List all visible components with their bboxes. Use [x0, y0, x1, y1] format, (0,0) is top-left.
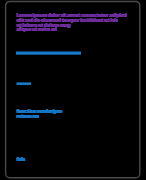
- staticText: Lorem ipsum dolor sit amet consectetur a…: [17, 12, 128, 19]
- staticText: aliqua ut enim ad: [17, 26, 58, 33]
- staticText: aliqua ut enim ad: [16, 26, 57, 33]
- staticText: fals: [17, 156, 26, 163]
- staticText: elit sed do eiusmod tempor incididunt ut…: [17, 17, 118, 24]
- staticText: aliqua ut enim ad: [17, 26, 58, 33]
- staticText: elit sed do eiusmod tempor incididunt ut…: [16, 17, 117, 24]
- staticText: return nu: [16, 113, 38, 120]
- staticText: ut labore et dolore mag: [16, 22, 70, 29]
- staticText: elit sed do eiusmod tempor incididunt ut…: [16, 17, 117, 24]
- staticText: return nu: [16, 113, 38, 120]
- staticText: ut labore et dolore mag: [16, 22, 70, 29]
- staticText: function render(pro: [16, 108, 62, 115]
- staticText: fals: [16, 156, 25, 163]
- staticText: return nu: [17, 113, 39, 120]
- staticText: function render(pro: [16, 108, 62, 115]
- staticText: aliqua ut enim ad: [16, 26, 57, 33]
- staticText: Lorem ipsum dolor sit amet consectetur a…: [16, 12, 127, 19]
- staticText: ut labore et dolore mag: [17, 22, 71, 29]
- staticText: function render(pro: [17, 108, 63, 115]
- staticText: ut labore et dolore mag: [17, 22, 71, 29]
- staticText: elit sed do eiusmod tempor incididunt ut…: [17, 17, 118, 24]
- staticText: Lorem ipsum dolor sit amet consectetur a…: [16, 12, 127, 19]
- staticText: Lorem ipsum dolor sit amet consectetur a…: [17, 12, 128, 19]
- staticText: return nu: [17, 113, 39, 120]
- staticText: fals: [17, 156, 26, 163]
- staticText: fals: [16, 156, 25, 163]
- staticText: function render(pro: [17, 108, 63, 115]
